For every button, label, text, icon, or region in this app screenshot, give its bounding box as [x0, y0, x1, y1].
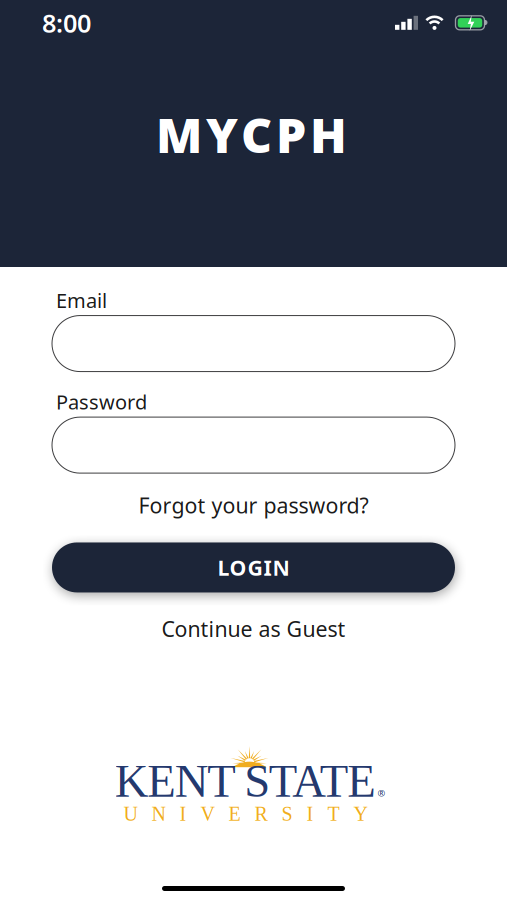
staticText: LOGIN [217, 553, 289, 582]
button[interactable]: LOGIN [52, 542, 455, 592]
staticText: 8:00 [42, 6, 91, 40]
button[interactable]: Forgot your password? [138, 491, 368, 519]
staticText: KENT STATE [115, 755, 376, 807]
button[interactable]: Password [52, 417, 455, 473]
button[interactable]: Email [52, 316, 455, 372]
staticText: ® [377, 787, 385, 799]
button[interactable]: Continue as Guest [161, 614, 345, 643]
staticText: Password [56, 389, 147, 415]
staticText: Continue as Guest [161, 614, 345, 643]
staticText: Email [56, 287, 107, 314]
staticText: UNIVERSITY [123, 803, 367, 825]
staticText: Forgot your password? [138, 491, 368, 519]
staticText: MYCPH [156, 103, 347, 166]
